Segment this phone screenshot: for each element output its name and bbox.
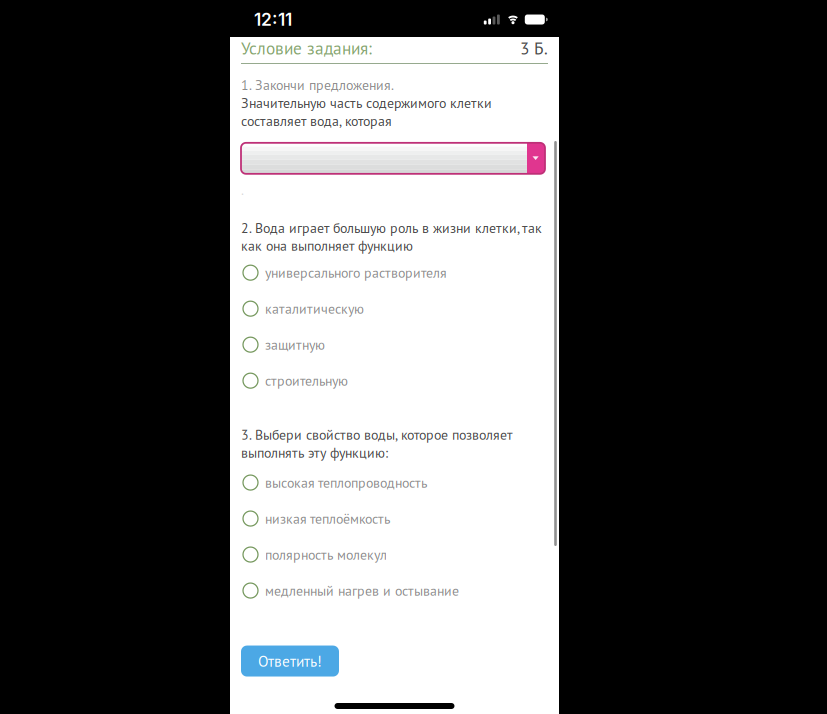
- button[interactable]: низкая теплоёмкость: [241, 507, 548, 531]
- button[interactable]: Выбери ответ: [241, 143, 545, 174]
- button[interactable]: универсального растворителя: [241, 261, 548, 285]
- staticText: строительную: [265, 372, 348, 390]
- staticText: медленный нагрев и остывание: [265, 582, 459, 599]
- button[interactable]: Ответить!: [241, 646, 339, 677]
- staticText: 3. Выбери свойство воды, которое позволя…: [241, 426, 512, 462]
- staticText: универсального растворителя: [265, 264, 447, 282]
- button[interactable]: строительную: [241, 369, 548, 393]
- button[interactable]: медленный нагрев и остывание: [241, 579, 548, 603]
- staticText: 2. Вода играет большую роль в жизни клет…: [241, 219, 542, 255]
- staticText: 1. Закончи предложения.: [241, 76, 394, 94]
- button[interactable]: полярность молекул: [241, 543, 548, 567]
- staticText: низкая теплоёмкость: [265, 510, 390, 527]
- staticText: полярность молекул: [265, 546, 387, 563]
- staticText: 3 Б.: [520, 37, 548, 59]
- staticText: защитную: [265, 336, 325, 354]
- staticText: Ответить!: [258, 651, 322, 671]
- staticText: Значительную часть содержимого клетки со…: [241, 94, 492, 130]
- staticText: высокая теплопроводность: [265, 474, 427, 491]
- button[interactable]: высокая теплопроводность: [241, 471, 548, 495]
- staticText: .: [241, 181, 244, 199]
- staticText: 12:11: [254, 9, 292, 30]
- staticText: Условие задания:: [241, 37, 372, 59]
- button[interactable]: защитную: [241, 333, 548, 357]
- staticText: каталитическую: [265, 300, 364, 318]
- button[interactable]: каталитическую: [241, 297, 548, 321]
